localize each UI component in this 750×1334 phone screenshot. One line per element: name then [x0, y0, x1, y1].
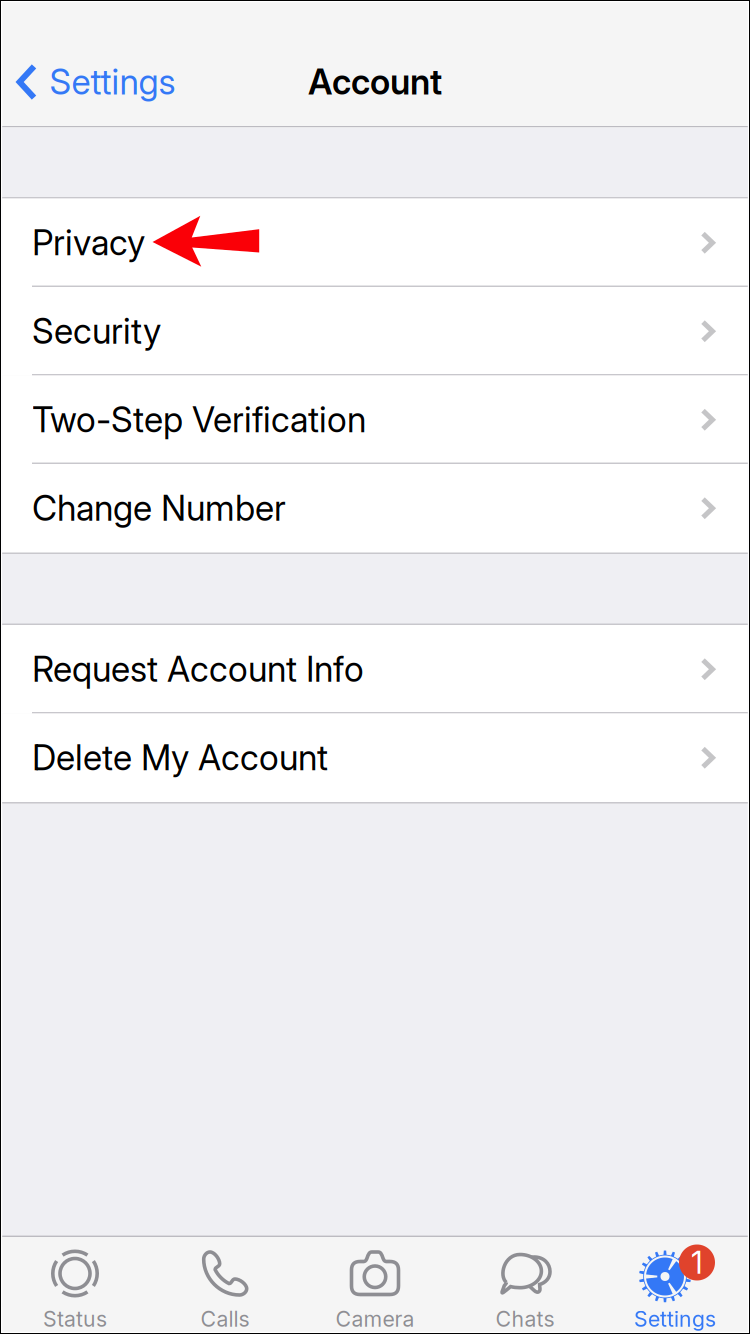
button[interactable]: Request Account Info [0, 625, 750, 713]
staticText: Calls [200, 1306, 249, 1332]
staticText: Camera [335, 1306, 414, 1332]
staticText: Two-Step Verification [32, 399, 366, 441]
button[interactable]: Change Number [0, 464, 750, 552]
button[interactable]: Delete My Account [0, 713, 750, 802]
button[interactable]: Two-Step Verification [0, 375, 750, 464]
staticText: Status [43, 1306, 107, 1332]
staticText: Privacy [32, 222, 145, 264]
button[interactable]: Calls [150, 1237, 300, 1334]
button[interactable]: Chats [450, 1237, 600, 1334]
button[interactable]: Privacy [0, 198, 750, 287]
staticText: Account [308, 61, 442, 103]
staticText: Chats [495, 1306, 554, 1332]
button[interactable]: 1 [600, 1237, 750, 1334]
staticText: Settings [634, 1306, 716, 1332]
button[interactable]: Security [0, 287, 750, 375]
button[interactable]: Settings [0, 38, 191, 126]
button[interactable]: Status [0, 1237, 150, 1334]
button[interactable]: Camera [300, 1237, 450, 1334]
staticText: 1 [691, 1244, 703, 1281]
staticText: Request Account Info [32, 648, 364, 690]
staticText: Security [32, 310, 161, 352]
staticText: Settings [49, 61, 175, 103]
staticText: Delete My Account [32, 737, 328, 779]
staticText: Change Number [32, 487, 286, 529]
